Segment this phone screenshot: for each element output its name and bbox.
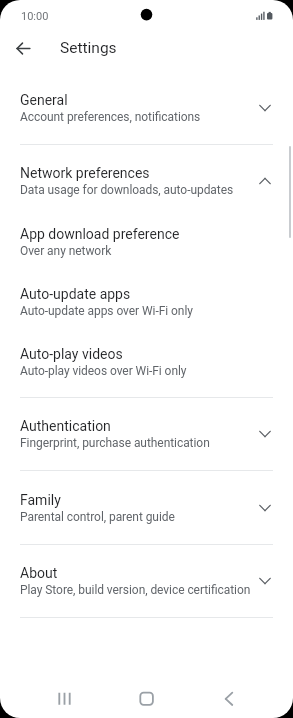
- button[interactable]: Expand: [251, 94, 279, 122]
- staticText: Network preferences: [20, 165, 150, 181]
- button[interactable]: Auto-play videos: [0, 337, 293, 397]
- staticText: Over any network: [20, 244, 112, 258]
- staticText: Settings: [60, 39, 117, 57]
- staticText: 10:00: [21, 10, 49, 23]
- staticText: Account preferences, notifications: [20, 110, 201, 124]
- button[interactable]: App download preference: [0, 217, 293, 277]
- button[interactable]: Expand: [251, 420, 279, 448]
- button[interactable]: Navigate back: [10, 35, 37, 62]
- staticText: Authentication: [20, 418, 111, 434]
- button[interactable]: Back: [204, 675, 253, 718]
- button[interactable]: Authentication: [0, 398, 293, 470]
- button[interactable]: Family: [0, 471, 293, 544]
- staticText: Parental control, parent guide: [20, 510, 175, 524]
- button[interactable]: Network preferences: [0, 145, 293, 217]
- staticText: Fingerprint, purchase authentication: [20, 436, 210, 450]
- staticText: Auto-play videos over Wi-Fi only: [20, 364, 187, 378]
- staticText: Family: [20, 492, 61, 508]
- staticText: General: [20, 92, 68, 108]
- button[interactable]: Auto-update apps: [0, 277, 293, 337]
- button[interactable]: Collapse: [251, 167, 279, 195]
- button[interactable]: Home: [122, 675, 171, 718]
- staticText: Auto-play videos: [20, 346, 123, 362]
- staticText: Auto-update apps over Wi-Fi only: [20, 304, 193, 318]
- button[interactable]: About: [0, 545, 293, 617]
- staticText: About: [20, 565, 58, 581]
- button[interactable]: Expand: [251, 567, 279, 595]
- button[interactable]: Recent apps: [40, 675, 89, 718]
- staticText: Play Store, build version, device certif…: [20, 583, 251, 597]
- staticText: Auto-update apps: [20, 286, 131, 302]
- staticText: Data usage for downloads, auto-updates: [20, 183, 234, 197]
- button[interactable]: General: [0, 71, 293, 144]
- button[interactable]: Expand: [251, 494, 279, 522]
- staticText: App download preference: [20, 226, 180, 242]
